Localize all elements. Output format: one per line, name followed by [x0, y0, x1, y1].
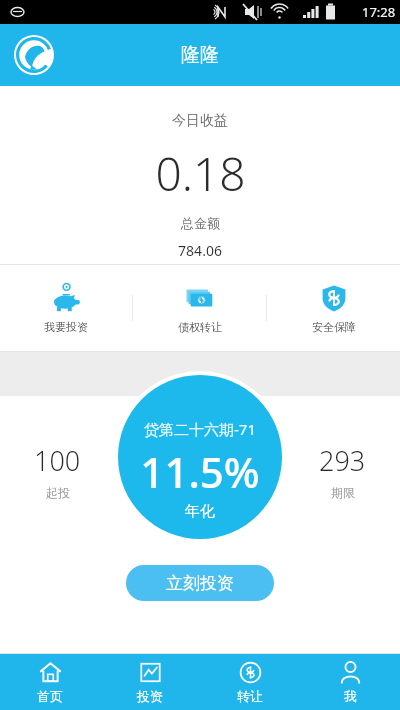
button[interactable]: 转让 — [200, 654, 300, 710]
staticText: 293 — [319, 442, 366, 479]
staticText: 100 — [34, 442, 81, 479]
staticText: 期限 — [331, 485, 355, 500]
staticText: 起投 — [46, 485, 70, 500]
staticText: 年化 — [185, 502, 215, 521]
button[interactable]: 我要投资 — [0, 265, 132, 351]
staticText: 隆隆 — [181, 43, 219, 67]
staticText: 784.06 — [178, 241, 222, 260]
button[interactable]: 立刻投资 — [126, 565, 274, 601]
staticText: 债权转让 — [178, 320, 222, 334]
staticText: 贷第二十六期-71 — [144, 419, 256, 439]
staticText: 首页 — [37, 688, 63, 704]
button[interactable]: 贷第二十六期-71 — [118, 375, 282, 539]
staticText: 我 — [344, 688, 357, 704]
staticText: 总金额 — [181, 215, 220, 231]
button[interactable]: 债权转让 — [133, 265, 266, 351]
staticText: 11.5% — [140, 443, 260, 500]
staticText: 立刻投资 — [166, 573, 234, 594]
button[interactable]: Logo — [14, 35, 54, 75]
staticText: 17:28 — [362, 3, 396, 21]
staticText: 我要投资 — [44, 320, 88, 334]
staticText: 投资 — [137, 688, 163, 704]
button[interactable]: 我 — [300, 654, 400, 710]
staticText: 转让 — [237, 688, 263, 704]
staticText: 今日收益 — [172, 112, 228, 130]
button[interactable]: 安全保障 — [267, 265, 400, 351]
staticText: 0.18 — [155, 142, 246, 205]
staticText: 安全保障 — [312, 320, 356, 334]
button[interactable]: 投资 — [100, 654, 200, 710]
button[interactable]: 首页 — [0, 654, 100, 710]
